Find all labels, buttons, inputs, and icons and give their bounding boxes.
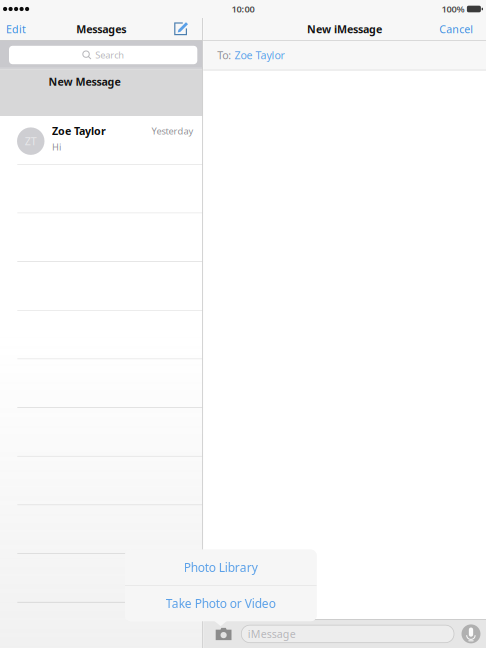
staticText: 10:00	[231, 3, 254, 15]
button[interactable]: New Message	[0, 69, 202, 116]
staticText: Take Photo or Video	[166, 595, 276, 611]
button[interactable]: Take Photo or Video	[125, 586, 317, 621]
staticText: Photo Library	[184, 559, 258, 575]
button[interactable]: Photo Library	[125, 550, 317, 585]
staticText: 100%	[441, 3, 464, 15]
staticText: Edit	[6, 22, 26, 36]
staticText: New Message	[49, 75, 121, 89]
button[interactable]: Edit	[0, 18, 35, 40]
staticText: Yesterday	[152, 125, 194, 137]
staticText: Hi	[52, 141, 61, 153]
button[interactable]: Dictate	[461, 624, 486, 643]
button[interactable]: ZT	[0, 116, 202, 165]
staticText: New iMessage	[307, 22, 382, 36]
staticText: Cancel	[439, 22, 473, 36]
button[interactable]: Cancel	[430, 18, 486, 40]
button[interactable]: Camera	[203, 627, 232, 640]
staticText: ZT	[25, 134, 37, 148]
staticText: Zoe Taylor	[52, 124, 106, 138]
button[interactable]: Compose	[166, 18, 202, 40]
staticText: iMessage	[248, 627, 296, 641]
staticText: Search	[95, 49, 124, 61]
staticText: Messages	[76, 22, 126, 36]
staticText: Zoe Taylor	[234, 48, 284, 62]
staticText: To:	[217, 48, 231, 62]
